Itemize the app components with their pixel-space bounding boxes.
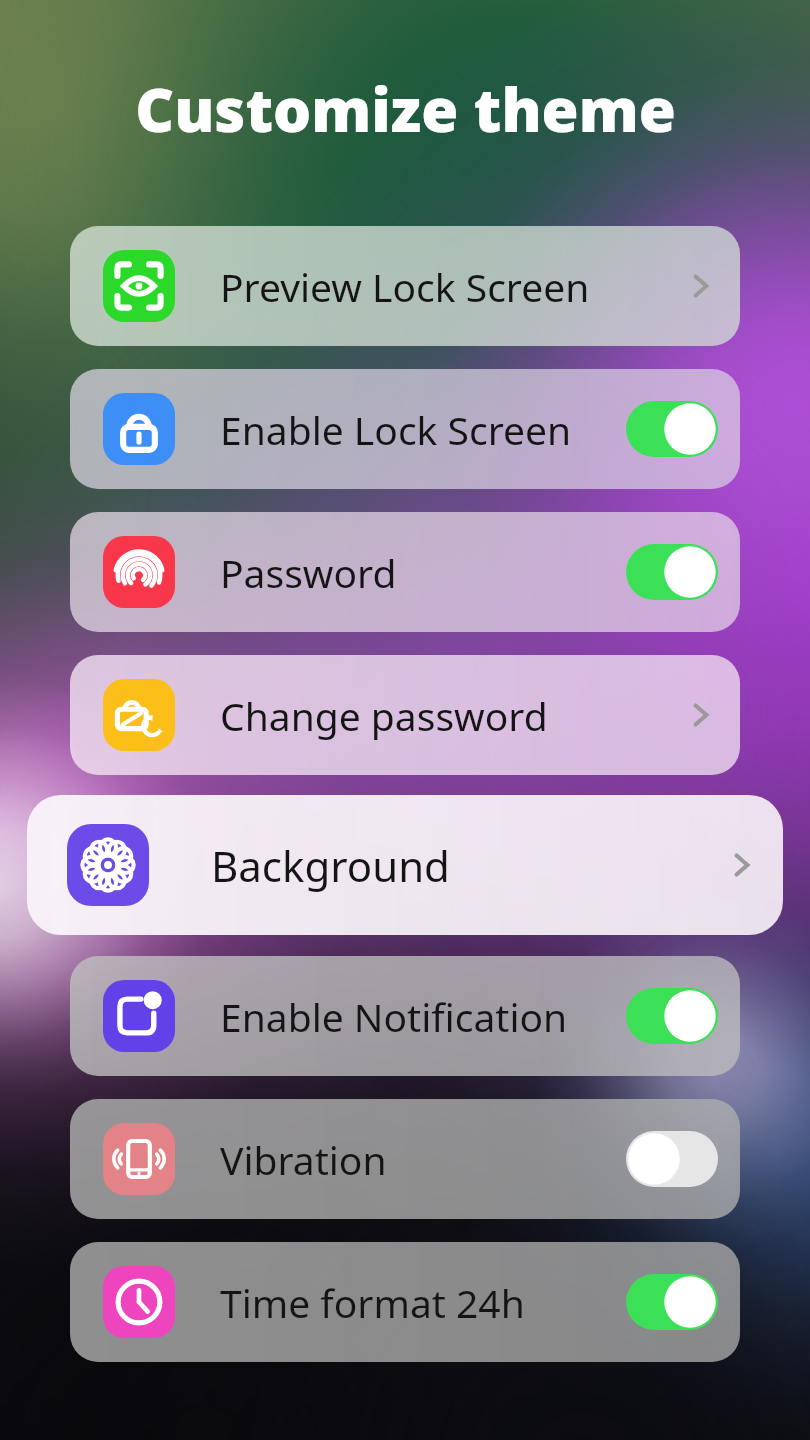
- staticText: Time format 24h: [220, 1276, 626, 1329]
- button[interactable]: Password: [70, 512, 740, 632]
- staticText: Enable Lock Screen: [220, 403, 626, 456]
- button[interactable]: Enable Notification toggle: [626, 988, 718, 1044]
- button[interactable]: Background: [27, 795, 783, 935]
- button[interactable]: Enable Notification: [70, 956, 740, 1076]
- button[interactable]: Change password: [70, 655, 740, 775]
- button[interactable]: Vibration toggle: [626, 1131, 718, 1187]
- staticText: Preview Lock Screen: [220, 260, 664, 313]
- button[interactable]: Open Preview Lock Screen: [664, 226, 738, 346]
- button[interactable]: Vibration: [70, 1099, 740, 1219]
- button[interactable]: Open Background: [705, 795, 779, 935]
- button[interactable]: Time format 24h toggle: [626, 1274, 718, 1330]
- button[interactable]: Enable Lock Screen: [70, 369, 740, 489]
- staticText: Password: [220, 546, 626, 599]
- staticText: Vibration: [220, 1133, 626, 1186]
- staticText: Customize theme: [135, 68, 676, 150]
- staticText: Change password: [220, 689, 664, 742]
- button[interactable]: Open Change password: [664, 655, 738, 775]
- button[interactable]: Time format 24h: [70, 1242, 740, 1362]
- button[interactable]: Enable Lock Screen toggle: [626, 401, 718, 457]
- staticText: Background: [211, 837, 705, 894]
- button[interactable]: Preview Lock Screen: [70, 226, 740, 346]
- staticText: Enable Notification: [220, 990, 626, 1043]
- button[interactable]: Password toggle: [626, 544, 718, 600]
